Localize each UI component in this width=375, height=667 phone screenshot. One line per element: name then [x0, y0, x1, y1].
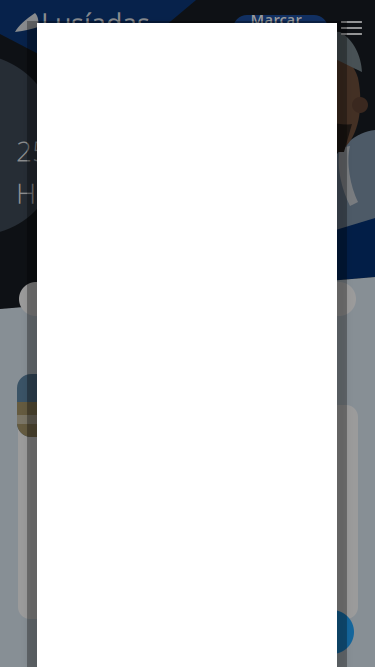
- staticText: HISTÓRIA: [16, 174, 139, 211]
- staticText: Lusíadas: [41, 5, 150, 41]
- button[interactable]: Marcar consulta: [233, 15, 328, 43]
- staticText: Marcar consulta: [250, 9, 310, 48]
- button[interactable]: Lusíadas: [14, 5, 150, 41]
- staticText: 25 ANOS A FAZER: [16, 132, 239, 169]
- button[interactable]: Menu: [328, 11, 375, 45]
